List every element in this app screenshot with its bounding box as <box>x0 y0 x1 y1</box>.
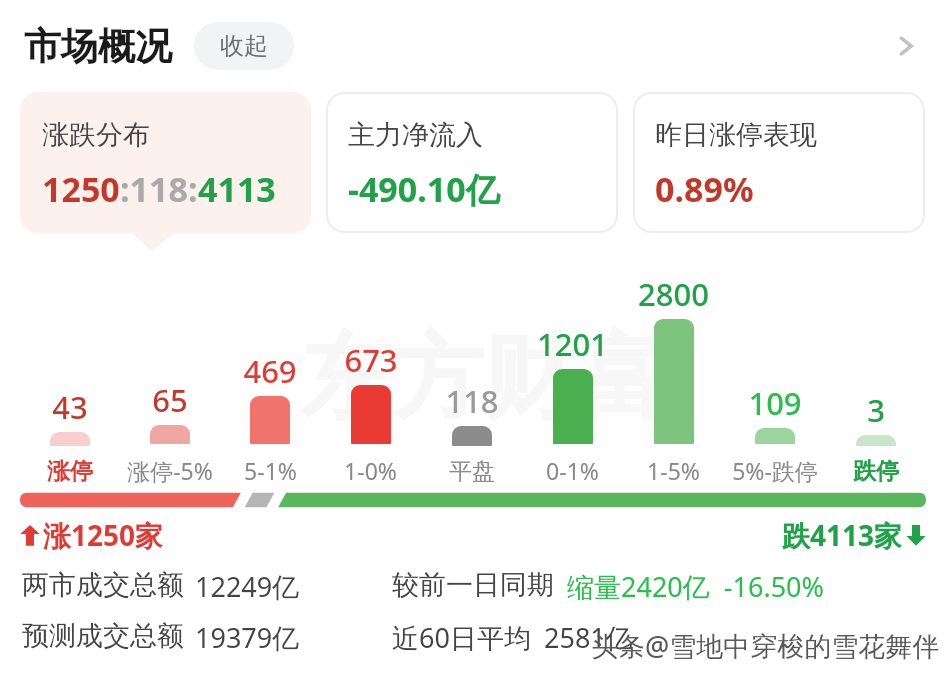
staticText: 市场概况 <box>24 23 172 70</box>
staticText: 65 <box>152 379 188 421</box>
staticText: 5%-跌停 <box>732 455 818 486</box>
button[interactable]: 673 <box>320 251 421 490</box>
staticText: 两市成交总额 <box>22 568 184 602</box>
staticText: 收起 <box>220 31 268 61</box>
button[interactable]: 469 <box>220 251 320 490</box>
button[interactable] <box>20 490 926 510</box>
button[interactable]: 1201 <box>522 251 623 490</box>
button[interactable]: 109 <box>724 251 825 490</box>
staticText: 0-1% <box>546 455 599 486</box>
staticText: 头条@雪地中穿梭的雪花舞伴 <box>591 627 940 664</box>
staticText: 109 <box>748 382 802 424</box>
button[interactable]: 2800 <box>623 251 724 490</box>
staticText: 4113 <box>198 166 276 212</box>
staticText: 较前一日同期 <box>392 568 554 602</box>
button[interactable]: 主力净流入 <box>326 92 618 233</box>
staticText: 673 <box>344 339 398 381</box>
button[interactable]: 昨日涨停表现 <box>633 92 925 233</box>
button[interactable]: 涨跌分布 <box>20 92 311 233</box>
staticText: 3 <box>867 389 885 431</box>
staticText: -490.10亿 <box>348 166 500 212</box>
staticText: 1250 <box>42 166 120 212</box>
staticText: 涨停-5% <box>127 455 213 486</box>
staticText: 跌停 <box>853 457 899 486</box>
staticText: 主力净流入 <box>348 118 483 152</box>
staticText: :118: <box>120 166 198 212</box>
button[interactable]: 65 <box>120 251 220 490</box>
button[interactable]: 118 <box>421 251 522 490</box>
staticText: 5-1% <box>244 455 297 486</box>
staticText: 预测成交总额 <box>22 619 184 653</box>
staticText: 东方财富 <box>300 320 668 436</box>
staticText: 近60日平均 <box>392 619 531 656</box>
staticText: 涨1250家 <box>43 516 164 554</box>
staticText: 2581亿 <box>544 619 633 656</box>
button[interactable]: 收起 <box>194 22 294 70</box>
staticText: 涨停 <box>47 457 93 486</box>
staticText: 469 <box>243 350 297 392</box>
staticText: 1-5% <box>647 455 700 486</box>
staticText: 1-0% <box>344 455 397 486</box>
staticText: 12249亿 <box>195 568 300 605</box>
staticText: 0.89% <box>655 166 754 212</box>
button[interactable]: 3 <box>825 251 926 490</box>
staticText: 43 <box>52 386 88 428</box>
staticText: 118 <box>445 380 499 422</box>
button[interactable]: 43 <box>20 251 120 490</box>
staticText: 跌4113家 <box>782 516 903 554</box>
staticText: 2800 <box>638 273 709 315</box>
staticText: 缩量2420亿 -16.50% <box>567 568 824 605</box>
button[interactable]: 查看更多 <box>884 24 928 68</box>
staticText: 平盘 <box>449 457 495 486</box>
staticText: 19379亿 <box>195 619 300 656</box>
staticText: 涨跌分布 <box>42 118 150 152</box>
staticText: 昨日涨停表现 <box>655 118 817 152</box>
staticText: 1201 <box>537 323 608 365</box>
